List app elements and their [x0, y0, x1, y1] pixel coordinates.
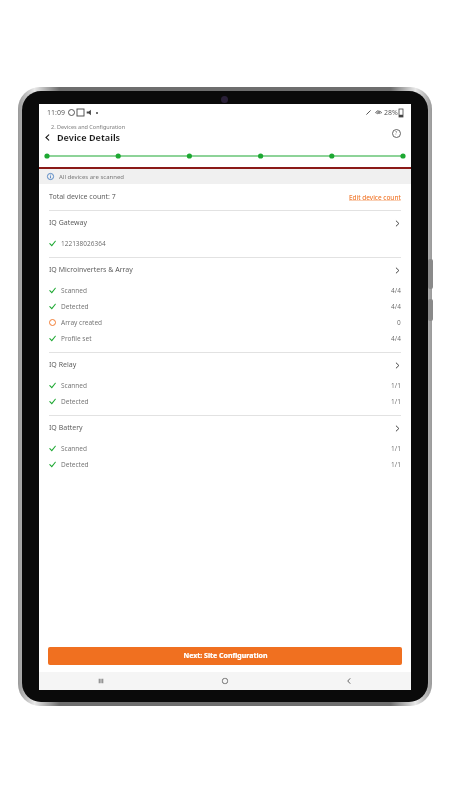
staticText: Device Details	[57, 131, 121, 143]
staticText: Edit device count	[349, 193, 401, 202]
staticText: 1/1	[391, 381, 401, 390]
staticText: 4/4	[391, 302, 401, 311]
button[interactable]: IQ Gateway	[39, 211, 411, 235]
staticText: All devices are scanned	[59, 173, 125, 181]
staticText: 4/4	[391, 286, 401, 295]
staticText: 1/1	[391, 397, 401, 406]
staticText: Detected	[61, 302, 89, 311]
staticText: Total device count: 7	[49, 192, 116, 202]
staticText: 4/4	[391, 334, 401, 343]
button[interactable]: IQ Microinverters & Array	[39, 258, 411, 282]
staticText: ?	[395, 130, 398, 137]
staticText: 2. Devices and Configuration	[51, 123, 126, 130]
button[interactable]: Back	[41, 131, 53, 143]
staticText: Scanned	[61, 444, 88, 453]
staticText: 122138026364	[61, 239, 106, 248]
staticText: Detected	[61, 397, 89, 406]
staticText: 0	[397, 318, 401, 327]
button[interactable]: Help	[389, 126, 403, 140]
staticText: Scanned	[61, 381, 88, 390]
staticText: 11:09	[47, 108, 65, 118]
staticText: 1/1	[391, 460, 401, 469]
button[interactable]: IQ Relay	[39, 353, 411, 377]
staticText: 28%	[384, 108, 398, 118]
staticText: Next: Site Configuration	[183, 651, 268, 661]
button[interactable]: Back	[287, 672, 411, 690]
staticText: Scanned	[61, 286, 88, 295]
staticText: IQ Gateway	[49, 218, 88, 228]
button[interactable]: Next: Site Configuration	[48, 647, 402, 665]
staticText: IQ Relay	[49, 360, 77, 370]
button[interactable]: Home	[163, 672, 287, 690]
button[interactable]: Recent apps	[39, 672, 163, 690]
button[interactable]: IQ Battery	[39, 416, 411, 440]
staticText: IQ Microinverters & Array	[49, 265, 133, 275]
staticText: Array created	[61, 318, 103, 327]
staticText: IQ Battery	[49, 423, 83, 433]
staticText: Detected	[61, 460, 89, 469]
staticText: Profile set	[61, 334, 92, 343]
button[interactable]: Edit device count	[349, 193, 401, 202]
staticText: 1/1	[391, 444, 401, 453]
